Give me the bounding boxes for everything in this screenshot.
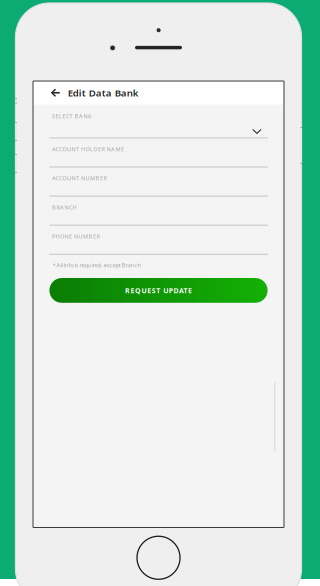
staticText: REQUEST UPDATE xyxy=(125,286,192,295)
button[interactable]: Edit Data Bank xyxy=(33,81,284,104)
staticText: BRANCH xyxy=(52,204,76,211)
staticText: SELECT BANK xyxy=(52,112,91,120)
button[interactable]: REQUEST UPDATE xyxy=(49,278,268,303)
staticText: ACCOUNT HOLDER NAME xyxy=(52,145,124,153)
staticText: Edit Data Bank xyxy=(68,86,139,99)
staticText: PHONE NUMBER xyxy=(52,233,99,240)
staticText: ACCOUNT NUMBER xyxy=(52,174,106,182)
staticText: * All info is required, except Branch xyxy=(53,261,142,269)
